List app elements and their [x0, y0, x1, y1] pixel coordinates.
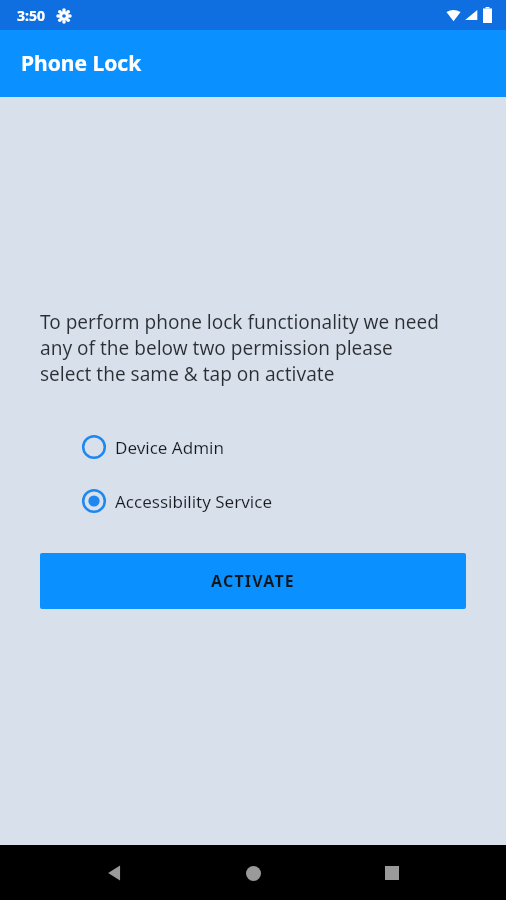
staticText: Device Admin	[115, 436, 224, 459]
staticText: Accessibility Service	[115, 490, 272, 513]
button[interactable]: Device Admin	[82, 433, 224, 461]
button[interactable]: Home	[229, 849, 277, 897]
button[interactable]: Back	[91, 849, 139, 897]
button[interactable]: Recent apps	[368, 849, 416, 897]
button[interactable]: Accessibility Service	[82, 487, 272, 515]
staticText: Phone Lock	[21, 49, 142, 78]
button[interactable]: ACTIVATE	[40, 553, 466, 609]
staticText: To perform phone lock functionality we n…	[40, 309, 440, 387]
staticText: 3:50	[17, 6, 45, 25]
staticText: ACTIVATE	[211, 570, 295, 592]
